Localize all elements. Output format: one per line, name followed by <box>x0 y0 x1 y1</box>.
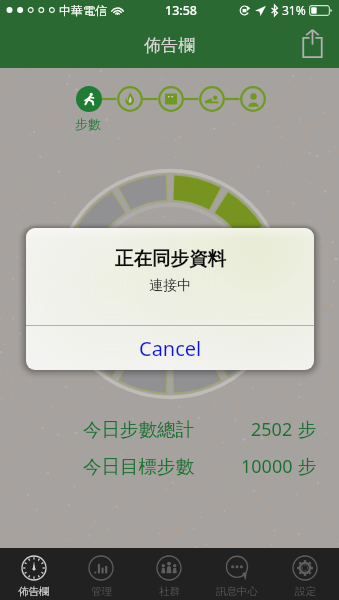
button[interactable]: 管理 <box>67 548 135 600</box>
staticText: 連接中 <box>149 277 191 295</box>
button[interactable]: Weight <box>158 86 184 112</box>
staticText: 訊息中心 <box>216 585 258 598</box>
staticText: 佈告欄 <box>18 585 50 598</box>
button[interactable]: Cancel <box>26 326 314 370</box>
button[interactable]: Steps <box>76 86 102 112</box>
button[interactable]: 社群 <box>135 548 203 600</box>
button[interactable]: Share <box>295 26 329 60</box>
staticText: 佈告欄 <box>144 35 195 56</box>
staticText: 步 <box>298 418 317 441</box>
staticText: 10000 <box>241 454 293 479</box>
button[interactable]: Profile <box>240 86 266 112</box>
button[interactable]: 佈告欄 <box>0 548 67 600</box>
button[interactable]: Sleep <box>199 86 225 112</box>
staticText: 中華電信 <box>59 3 107 18</box>
staticText: 管理 <box>91 585 112 598</box>
staticText: 設定 <box>295 585 316 598</box>
staticText: 步 <box>298 455 317 478</box>
staticText: 13:58 <box>165 2 198 19</box>
staticText: 今日步數總計 <box>83 418 194 441</box>
staticText: 社群 <box>159 585 180 598</box>
button[interactable]: 訊息中心 <box>203 548 271 600</box>
button[interactable]: 設定 <box>271 548 339 600</box>
staticText: 31% <box>282 2 306 18</box>
staticText: 正在同步資料 <box>115 247 226 270</box>
staticText: 2502 <box>251 417 293 442</box>
staticText: 步數 <box>75 116 101 132</box>
button[interactable]: Calories <box>117 86 143 112</box>
staticText: Cancel <box>139 335 202 362</box>
staticText: 今日目標步數 <box>83 455 194 478</box>
